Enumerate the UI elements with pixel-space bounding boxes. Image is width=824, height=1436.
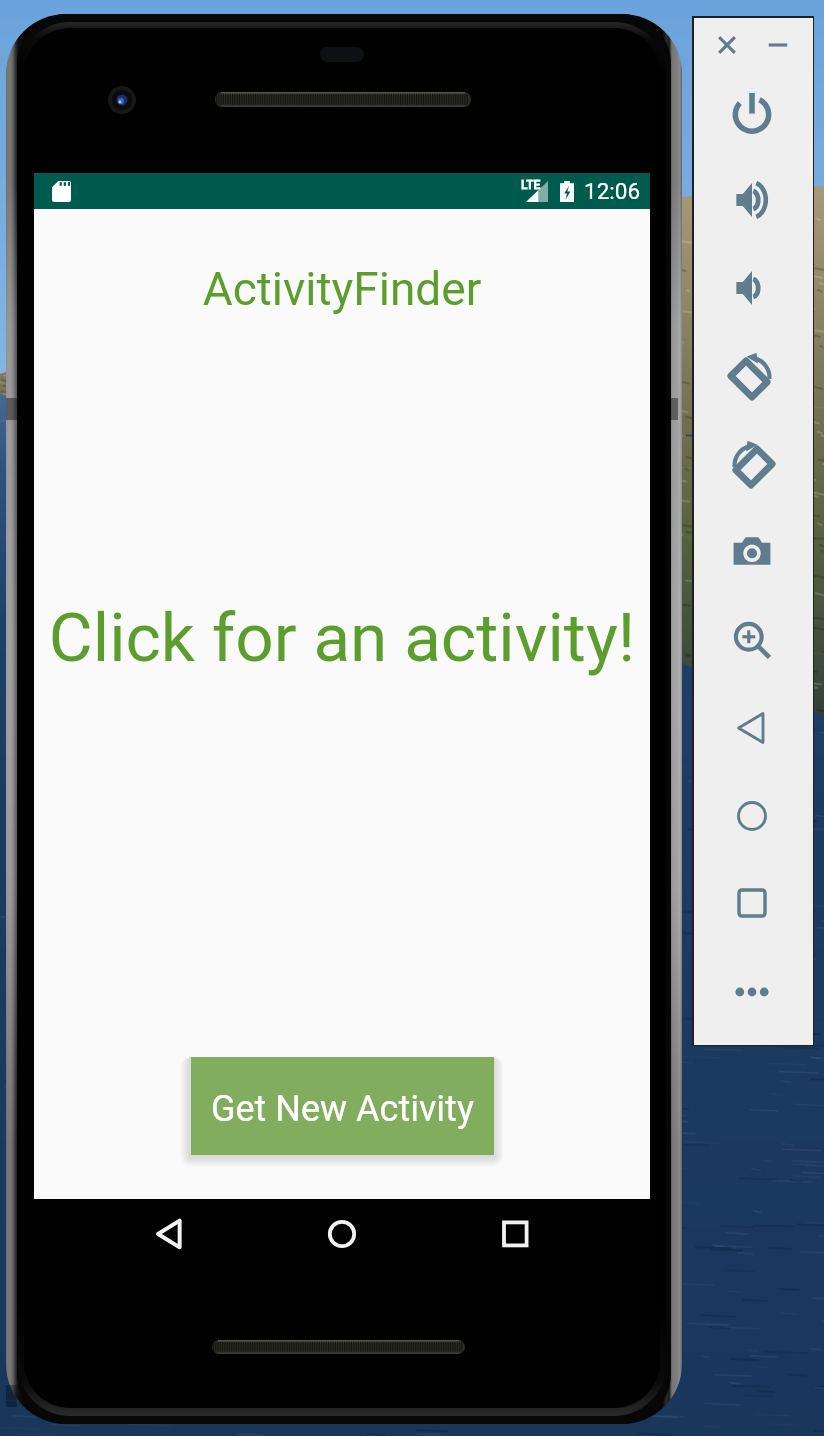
button[interactable]: Back: [732, 708, 772, 748]
button[interactable]: Back: [140, 1205, 198, 1263]
staticText: LTE: [521, 178, 541, 192]
button[interactable]: Power: [729, 89, 775, 135]
button[interactable]: Rotate left: [727, 351, 777, 401]
staticText: 12:06: [584, 178, 641, 204]
button[interactable]: Home: [732, 796, 772, 836]
button[interactable]: Home: [313, 1205, 371, 1263]
staticText: Click for an activity!: [34, 598, 650, 677]
button[interactable]: Zoom: [729, 617, 775, 663]
staticText: ActivityFinder: [34, 262, 650, 316]
button[interactable]: Recent apps: [732, 883, 772, 923]
button[interactable]: Close: [711, 29, 743, 61]
button[interactable]: Take screenshot: [729, 528, 775, 574]
button[interactable]: More: [732, 972, 772, 1012]
button[interactable]: Rotate right: [727, 439, 777, 489]
button[interactable]: Volume down: [729, 265, 775, 311]
button[interactable]: Recent apps: [486, 1205, 544, 1263]
staticText: Get New Activity: [211, 1088, 474, 1130]
button[interactable]: Minimize: [762, 29, 794, 61]
button[interactable]: Get New Activity: [191, 1057, 494, 1155]
button[interactable]: Volume up: [729, 177, 775, 223]
